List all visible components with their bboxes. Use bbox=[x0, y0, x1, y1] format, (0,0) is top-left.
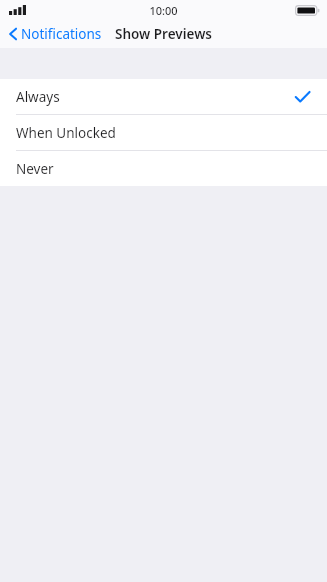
button[interactable]: Notifications bbox=[0, 20, 110, 48]
staticText: When Unlocked bbox=[16, 124, 116, 142]
button[interactable]: When Unlocked bbox=[0, 115, 327, 151]
staticText: Always bbox=[16, 88, 60, 106]
button[interactable]: Never bbox=[0, 151, 327, 186]
other: Battery full bbox=[295, 5, 320, 16]
staticText: Notifications bbox=[21, 25, 102, 43]
button[interactable]: Always bbox=[0, 79, 327, 115]
other: Cellular signal bbox=[9, 5, 26, 15]
other: Selected bbox=[295, 91, 310, 103]
staticText: Never bbox=[16, 160, 54, 178]
staticText: Show Previews bbox=[115, 25, 213, 43]
staticText: 10:00 bbox=[149, 3, 178, 18]
